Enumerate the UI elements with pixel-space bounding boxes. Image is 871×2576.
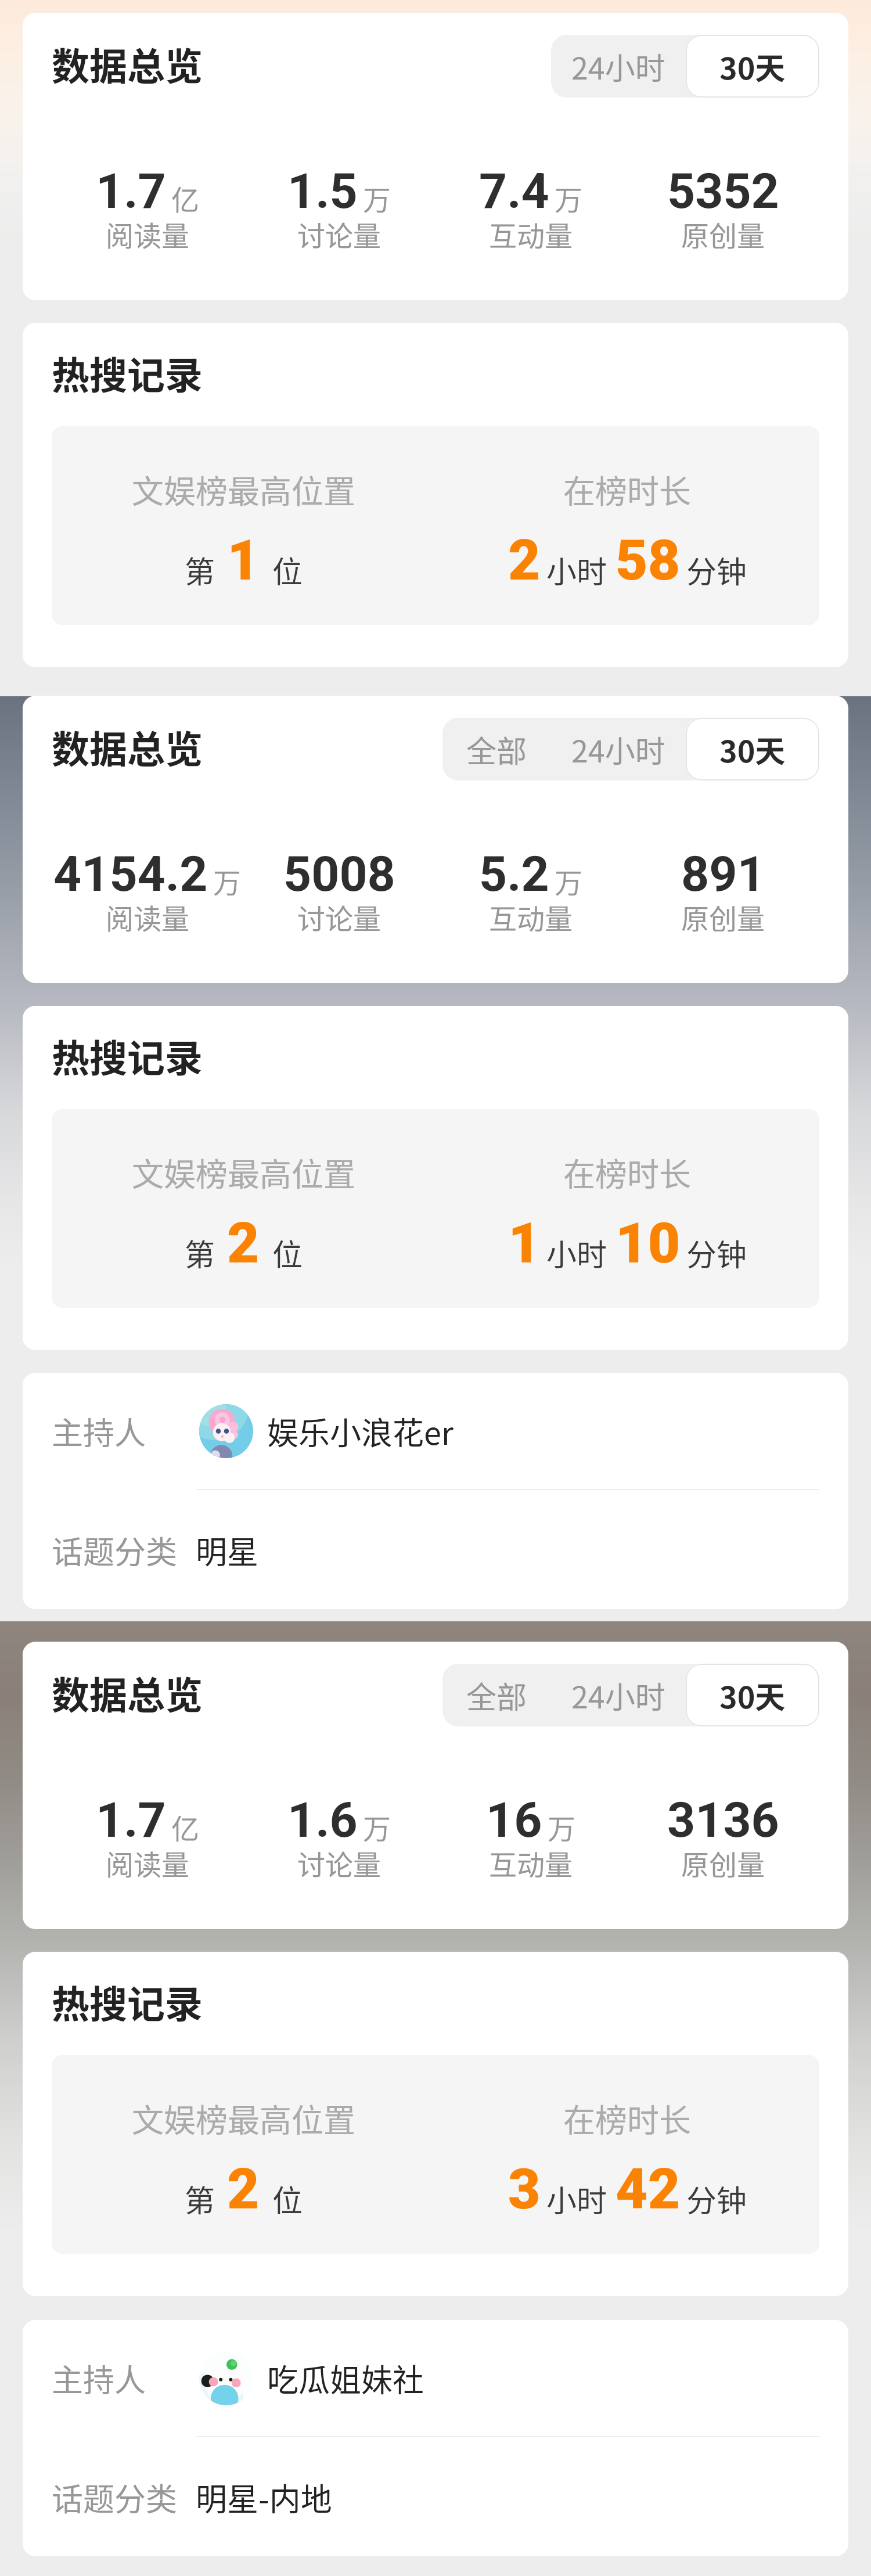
- staticText: 万: [555, 178, 583, 218]
- staticText: 在榜时长: [563, 466, 692, 512]
- staticText: 阅读量: [106, 1843, 190, 1883]
- staticText: 万: [555, 861, 583, 901]
- staticText: 万: [363, 1807, 391, 1847]
- staticText: 1: [508, 1211, 541, 1276]
- staticText: 数据总览: [52, 37, 203, 91]
- staticText: 万: [213, 861, 242, 901]
- staticText: 24小时: [571, 728, 665, 771]
- staticText: 明星-内地: [196, 2474, 332, 2520]
- staticText: 原创量: [681, 214, 765, 254]
- staticText: 阅读量: [106, 214, 190, 254]
- staticText: 第: [185, 1231, 215, 1275]
- staticText: 1: [227, 528, 260, 593]
- button[interactable]: 主持人: [52, 2320, 819, 2436]
- staticText: 互动量: [489, 897, 573, 937]
- staticText: 42: [616, 2157, 681, 2222]
- staticText: 1.7: [96, 1791, 166, 1848]
- staticText: 7.4: [479, 163, 549, 220]
- staticText: 5008: [283, 846, 395, 902]
- staticText: 阅读量: [106, 897, 190, 937]
- staticText: 话题分类: [52, 2474, 177, 2520]
- staticText: 1.7: [96, 163, 166, 220]
- button[interactable]: 24小时: [551, 35, 686, 98]
- staticText: 数据总览: [52, 1665, 203, 1720]
- staticText: 数据总览: [52, 719, 203, 774]
- staticText: 1.6: [287, 1791, 358, 1848]
- staticText: 全部: [466, 728, 527, 771]
- button[interactable]: 24小时: [551, 718, 686, 780]
- button[interactable]: 话题分类: [52, 1490, 819, 1609]
- staticText: 热搜记录: [52, 346, 203, 400]
- staticText: 3: [508, 2157, 541, 2222]
- staticText: 全部: [466, 1674, 527, 1717]
- staticText: 热搜记录: [52, 1028, 203, 1083]
- staticText: 文娱榜最高位置: [132, 1149, 356, 1195]
- staticText: 娱乐小浪花er: [267, 1408, 454, 1454]
- staticText: 在榜时长: [563, 2095, 692, 2141]
- staticText: 分钟: [686, 1231, 747, 1275]
- staticText: 万: [363, 178, 391, 218]
- staticText: 文娱榜最高位置: [132, 466, 356, 512]
- staticText: 小时: [546, 1231, 607, 1275]
- staticText: 5352: [667, 163, 779, 220]
- staticText: 2: [227, 2157, 260, 2222]
- staticText: 主持人: [52, 2355, 146, 2401]
- staticText: 热搜记录: [52, 1974, 203, 2029]
- staticText: 分钟: [686, 2177, 747, 2221]
- staticText: 在榜时长: [563, 1149, 692, 1195]
- staticText: 30天: [719, 1674, 786, 1717]
- staticText: 30天: [719, 728, 786, 771]
- staticText: 主持人: [52, 1408, 146, 1454]
- staticText: 原创量: [681, 897, 765, 937]
- staticText: 1.5: [287, 163, 358, 220]
- button[interactable]: 全部: [442, 718, 551, 780]
- staticText: 分钟: [686, 548, 747, 592]
- staticText: 2: [227, 1211, 260, 1276]
- staticText: 30天: [719, 45, 786, 88]
- staticText: 位: [272, 548, 303, 592]
- staticText: 58: [616, 528, 681, 593]
- staticText: 亿: [171, 178, 200, 218]
- staticText: 互动量: [489, 1843, 573, 1883]
- staticText: 讨论量: [297, 1843, 381, 1883]
- button[interactable]: 全部: [442, 1664, 551, 1726]
- staticText: 16: [486, 1791, 542, 1848]
- staticText: 位: [272, 1231, 303, 1275]
- button[interactable]: 主持人: [52, 1373, 819, 1489]
- staticText: 原创量: [681, 1843, 765, 1883]
- staticText: 讨论量: [297, 214, 381, 254]
- staticText: 讨论量: [297, 897, 381, 937]
- button[interactable]: 30天: [686, 35, 819, 98]
- staticText: 2: [508, 528, 541, 593]
- staticText: 明星: [196, 1527, 258, 1573]
- staticText: 24小时: [571, 45, 665, 88]
- staticText: 话题分类: [52, 1527, 177, 1573]
- staticText: 10: [616, 1211, 681, 1276]
- staticText: 位: [272, 2177, 303, 2221]
- staticText: 第: [185, 548, 215, 592]
- staticText: 24小时: [571, 1674, 665, 1717]
- staticText: 5.2: [479, 846, 549, 902]
- staticText: 4154.2: [53, 846, 208, 902]
- staticText: 小时: [546, 2177, 607, 2221]
- staticText: 891: [681, 846, 765, 902]
- staticText: 小时: [546, 548, 607, 592]
- staticText: 万: [548, 1807, 576, 1847]
- button[interactable]: 30天: [686, 718, 819, 780]
- button[interactable]: 24小时: [551, 1664, 686, 1726]
- button[interactable]: 30天: [686, 1664, 819, 1726]
- staticText: 3136: [667, 1791, 779, 1848]
- staticText: 文娱榜最高位置: [132, 2095, 356, 2141]
- button[interactable]: 话题分类: [52, 2437, 819, 2556]
- staticText: 亿: [171, 1807, 200, 1847]
- staticText: 互动量: [489, 214, 573, 254]
- staticText: 吃瓜姐妹社: [267, 2355, 424, 2401]
- staticText: 第: [185, 2177, 215, 2221]
